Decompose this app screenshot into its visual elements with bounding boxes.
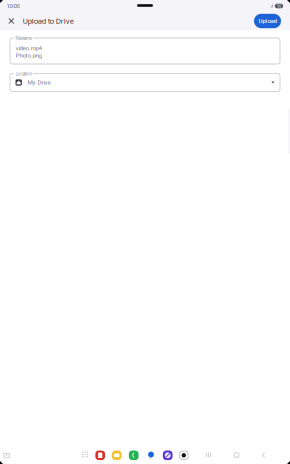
staticText: 92 — [277, 3, 281, 8]
button[interactable]: Docs — [95, 451, 105, 460]
button[interactable]: Phone — [129, 451, 138, 460]
button[interactable]: All apps — [79, 448, 91, 460]
button[interactable]: Close — [0, 12, 23, 30]
button[interactable]: Keep — [112, 451, 122, 460]
staticText: My Drive — [27, 79, 50, 86]
staticText: Filename — [16, 36, 32, 41]
button[interactable]: Browser — [163, 451, 172, 460]
button[interactable]: Home — [229, 447, 244, 462]
staticText: Upload to Drive — [23, 16, 74, 26]
button[interactable]: Screenshot — [0, 449, 13, 462]
button[interactable]: Camera — [179, 451, 189, 460]
staticText: Photo.png — [15, 52, 41, 59]
button[interactable]: Recent apps — [201, 447, 216, 462]
button[interactable]: Upload — [254, 14, 281, 28]
staticText: video.mp4 — [15, 44, 41, 52]
staticText: 10:00 — [6, 2, 19, 9]
button[interactable]: Back — [256, 447, 271, 462]
button[interactable]: Messages — [146, 451, 156, 460]
staticText: Location — [16, 71, 32, 76]
staticText: Upload — [258, 17, 276, 25]
